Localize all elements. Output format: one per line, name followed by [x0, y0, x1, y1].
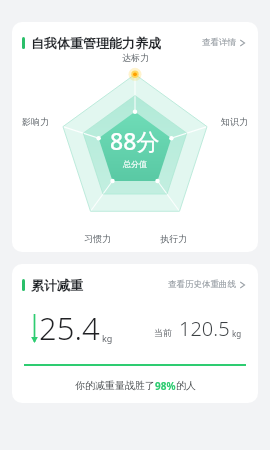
staticText: 98% — [155, 379, 176, 393]
staticText: kg — [232, 328, 242, 339]
button[interactable]: 查看详情 — [200, 33, 248, 52]
button[interactable]: 自我体重管理能力养成 — [12, 22, 258, 252]
staticText: 习惯力 — [84, 233, 111, 244]
staticText: 累计减重 — [31, 277, 83, 293]
staticText: 知识力 — [221, 116, 248, 127]
staticText: 的人 — [176, 379, 196, 392]
staticText: 25.4 — [39, 307, 100, 349]
staticText: 120.5 — [179, 315, 230, 342]
staticText: 你的减重量战胜了 — [75, 379, 155, 392]
staticText: 查看详情 — [202, 37, 236, 48]
staticText: 当前 — [154, 327, 172, 338]
staticText: 自我体重管理能力养成 — [31, 35, 161, 51]
staticText: kg — [102, 332, 113, 344]
staticText: 影响力 — [22, 116, 49, 127]
staticText: 查看历史体重曲线 — [168, 279, 236, 290]
button[interactable]: 累计减重 — [12, 264, 258, 403]
staticText: 达标力 — [122, 52, 149, 63]
staticText: 88分 — [110, 125, 160, 156]
staticText: 执行力 — [160, 233, 187, 244]
button[interactable]: 查看历史体重曲线 — [166, 275, 248, 294]
staticText: 总分值 — [123, 159, 147, 169]
